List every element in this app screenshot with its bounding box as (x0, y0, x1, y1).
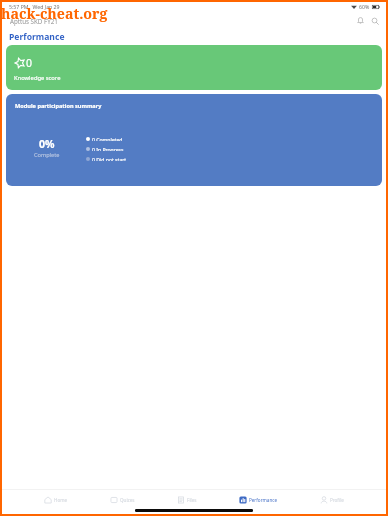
button[interactable]: Performance (239, 490, 278, 509)
staticText: 0% (39, 137, 55, 151)
staticText: Apttus SKD FY21 (10, 17, 58, 25)
staticText: Performance (249, 497, 278, 503)
button[interactable]: 0 (6, 45, 382, 90)
button[interactable]: Home (44, 490, 68, 509)
staticText: 5:57 PM Wed Jan 29 (9, 3, 60, 10)
staticText: Complete (34, 151, 60, 159)
button[interactable]: Quizes (110, 490, 135, 509)
staticText: Knowledge score (14, 74, 61, 82)
staticText: 0 Completed (92, 137, 123, 141)
button[interactable]: Search (368, 14, 381, 27)
staticText: hack-cheat.org (1, 4, 108, 23)
staticText: 60% (359, 3, 370, 10)
button[interactable]: Notifications (354, 14, 367, 27)
staticText: Quizes (120, 497, 135, 503)
button[interactable]: Files (177, 490, 197, 509)
staticText: Profile (330, 497, 344, 503)
button[interactable]: Module participation summary (6, 94, 382, 186)
staticText: Module participation summary (15, 102, 102, 110)
staticText: 0 (26, 56, 33, 70)
staticText: Files (187, 497, 197, 503)
staticText: Home (54, 497, 68, 503)
staticText: 0 Did not start (92, 157, 127, 161)
staticText: 0 In Progress (92, 147, 124, 151)
staticText: Performance (9, 31, 65, 43)
button[interactable]: Profile (320, 490, 344, 509)
